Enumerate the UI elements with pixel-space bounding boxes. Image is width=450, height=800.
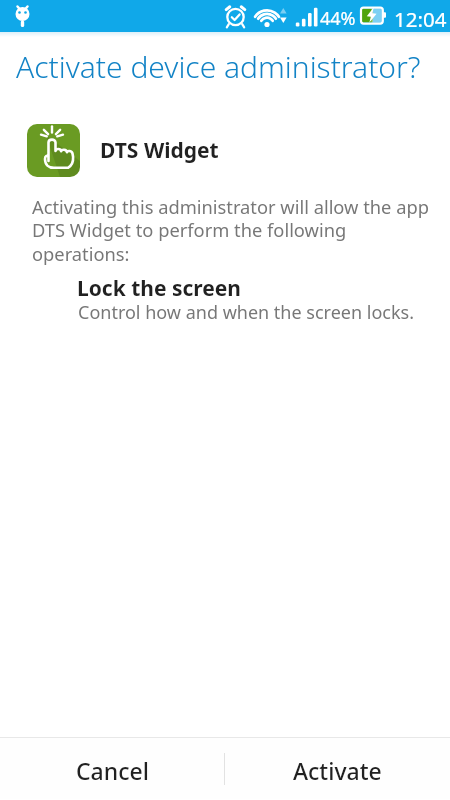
staticText: 12:04 bbox=[394, 5, 447, 33]
staticText: Activate bbox=[293, 755, 382, 786]
button[interactable]: Cancel bbox=[0, 738, 224, 799]
staticText: Control how and when the screen locks. bbox=[78, 300, 414, 325]
staticText: Activating this administrator will allow… bbox=[32, 194, 429, 267]
staticText: Activate device administrator? bbox=[16, 46, 421, 87]
staticText: 44% bbox=[320, 6, 356, 31]
staticText: DTS Widget bbox=[100, 136, 219, 165]
staticText: Cancel bbox=[76, 755, 149, 786]
staticText: Lock the screen bbox=[77, 274, 242, 303]
button[interactable]: Activate bbox=[225, 738, 450, 799]
